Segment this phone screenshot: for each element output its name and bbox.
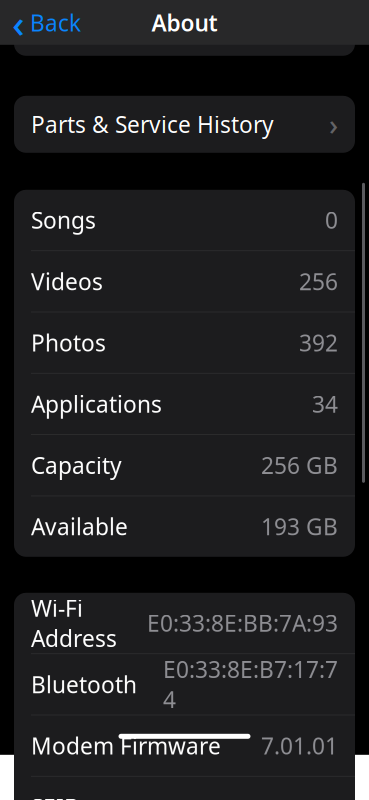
staticText: Photos: [31, 328, 106, 358]
staticText: E0:33:8E:BB:7A:93: [147, 608, 338, 638]
staticText: 34: [312, 389, 338, 419]
staticText: Videos: [31, 266, 103, 296]
staticText: 193 GB: [261, 511, 338, 542]
staticText: ‹: [12, 0, 25, 48]
button[interactable]: ‹: [2, 1, 91, 45]
staticText: Modem Firmware: [31, 731, 221, 761]
staticText: 256 GB: [261, 450, 338, 480]
button[interactable]: Parts & Service History: [14, 96, 355, 153]
staticText: Parts & Service History: [31, 109, 274, 139]
staticText: E0:33:8E:B7:17:74: [163, 654, 338, 714]
staticText: Bluetooth: [31, 669, 137, 699]
staticText: Back: [30, 8, 81, 38]
staticText: Applications: [31, 389, 162, 419]
staticText: 0: [325, 205, 338, 235]
staticText: Available: [31, 511, 128, 542]
staticText: Capacity: [31, 450, 122, 480]
staticText: 256: [299, 266, 338, 296]
staticText: Wi-Fi Address: [31, 593, 117, 653]
staticText: 7.01.01: [261, 731, 338, 761]
staticText: Songs: [31, 205, 96, 235]
staticText: SEID: [31, 792, 81, 800]
staticText: 392: [299, 328, 338, 358]
staticText: ›: [329, 106, 338, 143]
staticText: About: [151, 8, 217, 38]
